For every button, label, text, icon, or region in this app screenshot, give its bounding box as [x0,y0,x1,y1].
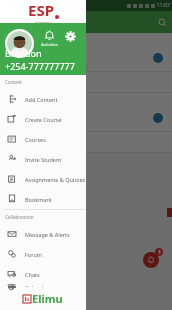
staticText: 11:07 [157,2,170,9]
button[interactable]: Forum [0,244,86,264]
staticText: Assignments & Quizzes [25,176,86,183]
staticText: eLearning [35,20,52,23]
button[interactable]: Wed Sun 14 Jan 2018 [0,93,172,153]
button[interactable]: Message & Alerts [0,224,86,244]
staticText: Elimu [32,291,63,306]
staticText: Wed Sun 14 Jan 2018 [5,98,54,105]
staticText: Bookmark [25,196,52,203]
button[interactable]: Invite Student [0,149,86,169]
staticText: Invite Student [25,156,62,163]
button[interactable]: Bookmark [0,189,86,209]
button[interactable]: Calender [0,284,86,287]
staticText: Activities [41,42,58,47]
staticText: Message & Alerts [25,231,70,238]
staticText: Add Content [25,96,58,103]
button[interactable]: Add Content [0,89,86,109]
staticText: Wed 04 Jan 2018 [5,38,44,45]
staticText: Forum [25,251,42,258]
staticText: +254-777777777 [5,60,75,72]
button[interactable]: Chats [0,264,86,284]
button[interactable]: Assignments & Quizzes [0,169,86,189]
staticText: Collaboration [5,214,34,220]
button[interactable]: Profile photo [7,31,32,56]
staticText: Create Course [25,116,62,123]
button[interactable]: Search [152,12,172,32]
staticText: ESP [28,0,54,20]
button[interactable]: Create Course [0,109,86,129]
button[interactable]: Activities [41,30,58,47]
button[interactable]: Courses [0,129,86,149]
button[interactable]: Notifications [143,252,159,268]
staticText: Calender [25,284,49,287]
staticText: 1 [158,249,161,256]
staticText: Content [5,79,22,85]
staticText: Courses [25,136,46,143]
staticText: Chats [25,271,40,278]
button[interactable]: Wed 04 Jan 2018 [0,33,172,93]
button[interactable]: Settings [64,30,76,42]
staticText: Brandon [5,47,42,59]
